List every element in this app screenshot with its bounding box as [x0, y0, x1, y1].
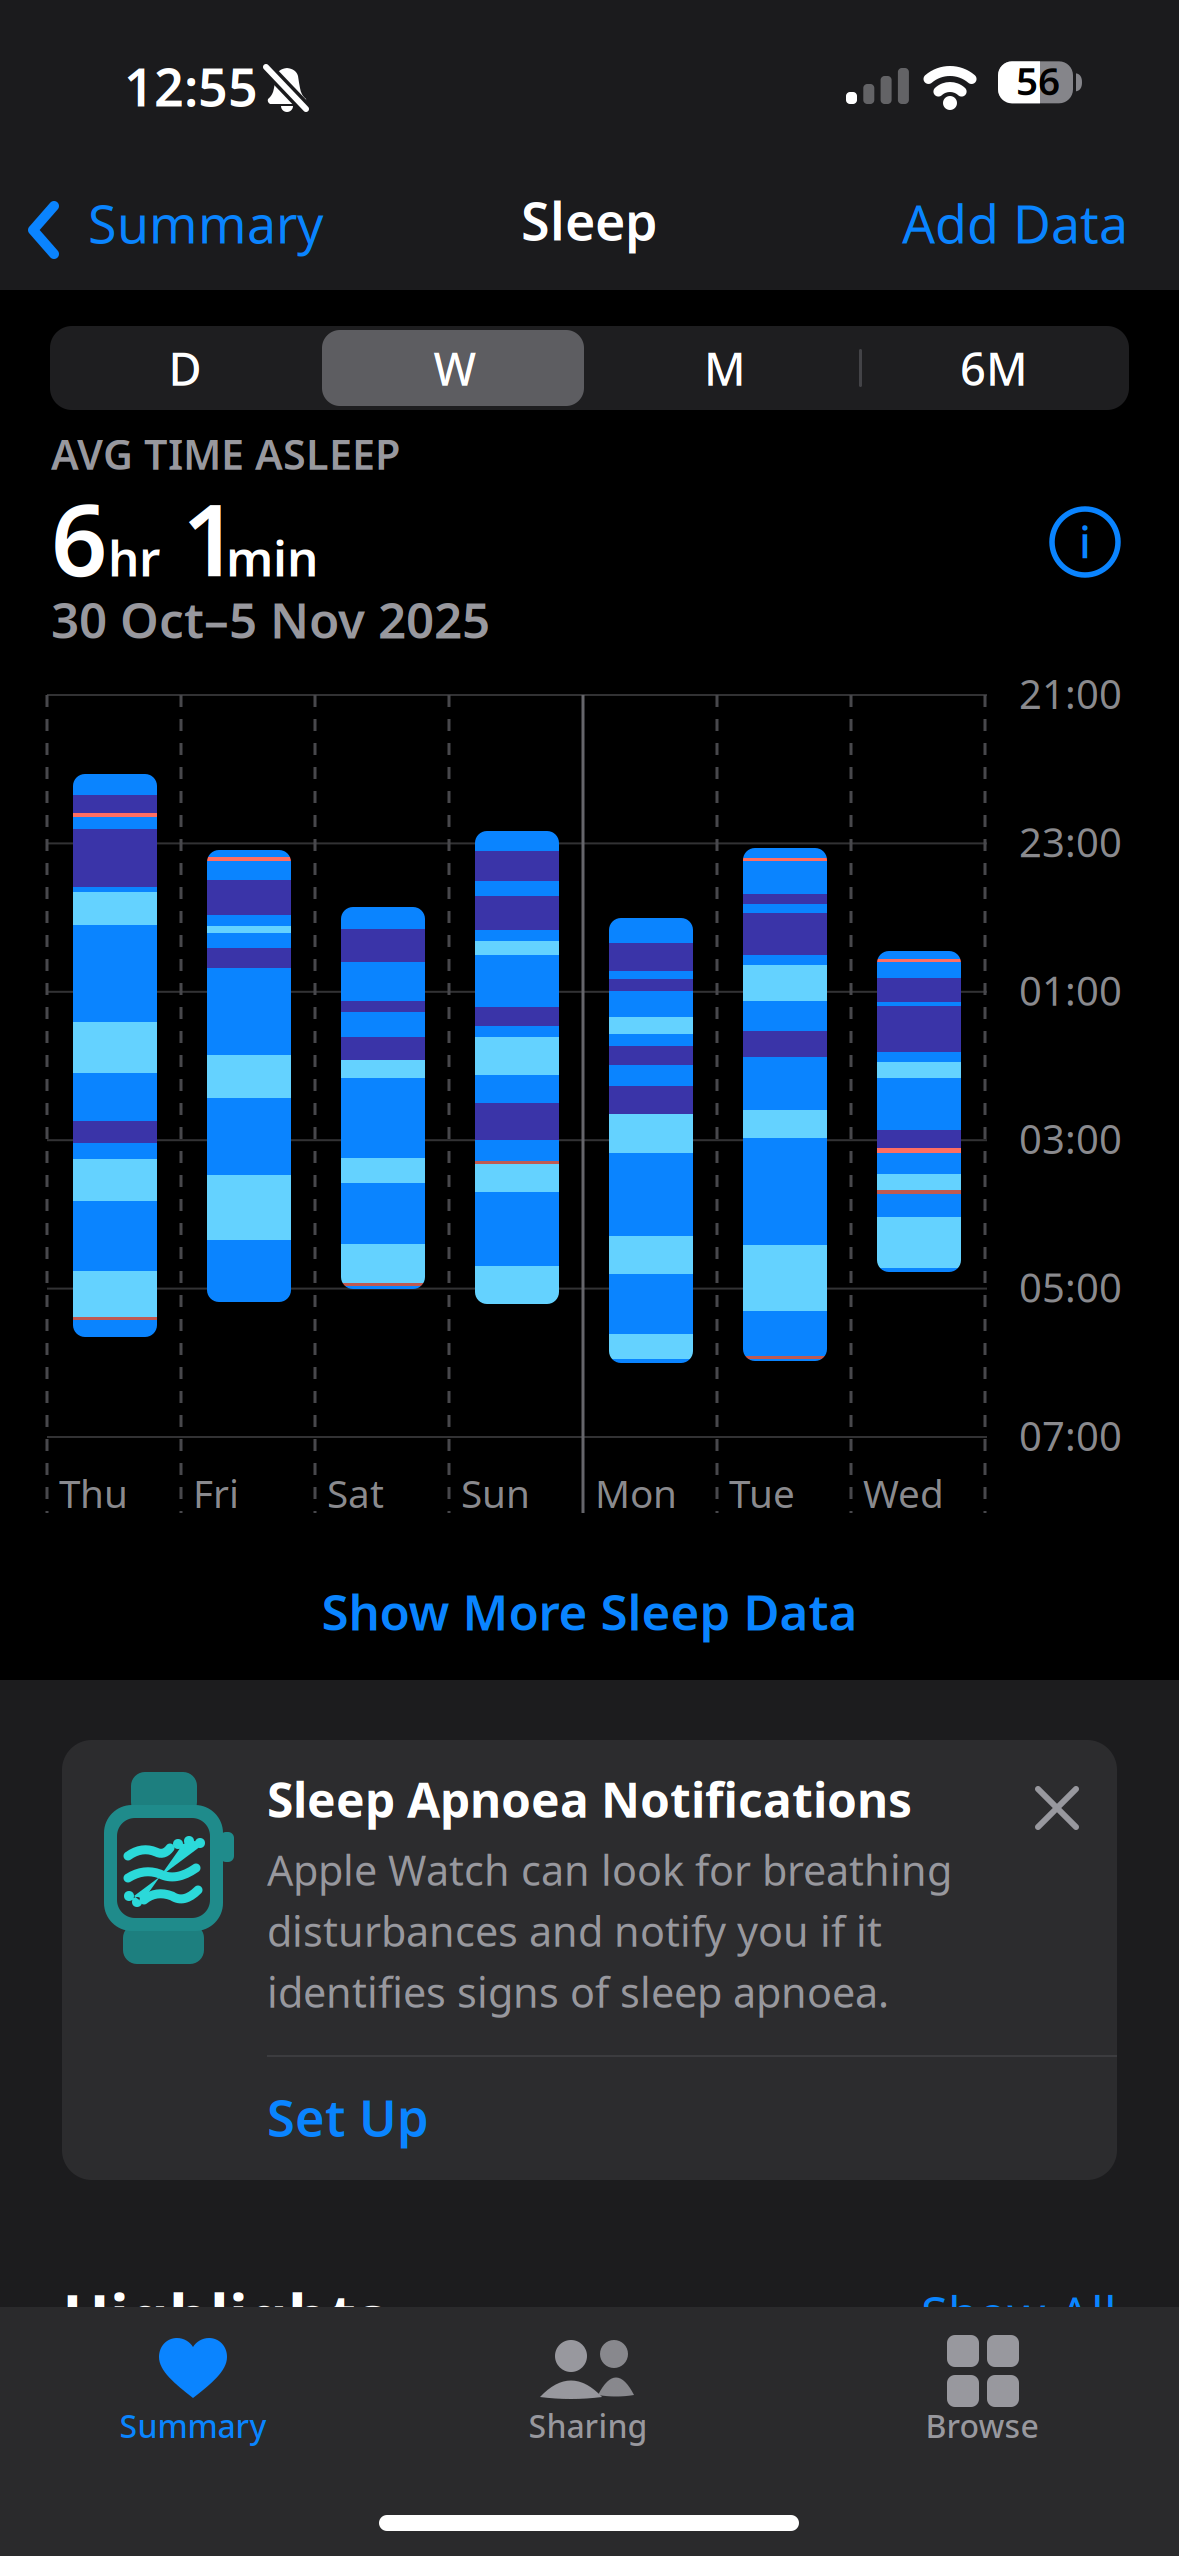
staticText: 23:00 [1019, 815, 1122, 868]
button[interactable]: About Sleep [1048, 505, 1122, 579]
staticText: Add Data [902, 189, 1128, 258]
staticText: Mon [595, 1467, 677, 1518]
staticText: identifies signs of sleep apnoea. [267, 1964, 889, 2019]
staticText: Apple Watch can look for breathing [267, 1842, 952, 1897]
button[interactable]: Sharing [393, 2307, 783, 2467]
staticText: Highlights [62, 2274, 387, 2357]
staticText: D [168, 338, 201, 398]
button[interactable]: Show All [0, 2281, 1117, 2346]
staticText: Thu [59, 1467, 128, 1518]
staticText: AVG TIME ASLEEP [51, 426, 400, 481]
staticText: min [226, 525, 318, 590]
staticText: Browse [925, 2404, 1038, 2447]
staticText: Summary [119, 2404, 266, 2447]
staticText: hr [108, 525, 160, 590]
staticText: Summary [88, 189, 324, 258]
button[interactable]: 6M [859, 338, 1129, 398]
staticText: M [704, 338, 746, 398]
button[interactable]: W [320, 338, 590, 398]
staticText: 30 Oct–5 Nov 2025 [51, 587, 490, 652]
staticText: Show All [921, 2281, 1117, 2346]
staticText: Wed [863, 1467, 944, 1518]
staticText: Sat [327, 1467, 384, 1518]
staticText: 07:00 [1019, 1409, 1122, 1462]
staticText: Sleep [521, 186, 658, 255]
staticText: Sleep Apnoea Notifications [267, 1767, 912, 1831]
button[interactable]: Show More Sleep Data [0, 1579, 1179, 1644]
staticText: Sharing [528, 2404, 647, 2447]
staticText: 21:00 [1019, 667, 1122, 720]
staticText: 6 [51, 472, 107, 603]
staticText: 03:00 [1019, 1112, 1122, 1165]
staticText: i [1079, 512, 1091, 570]
staticText: 6M [960, 338, 1028, 398]
button[interactable]: D [50, 338, 320, 398]
button[interactable]: Dismiss [1038, 1789, 1076, 1827]
button[interactable]: Add Data [0, 189, 1128, 258]
button[interactable]: M [590, 338, 860, 398]
staticText: 01:00 [1019, 964, 1122, 1017]
staticText: Set Up [267, 2083, 429, 2151]
staticText: 56 [1016, 55, 1060, 106]
staticText: 1 [182, 472, 238, 603]
staticText: 12:55 [124, 52, 258, 121]
staticText: disturbances and notify you if it [267, 1903, 882, 1958]
staticText: Sun [461, 1467, 530, 1518]
staticText: Tue [729, 1467, 795, 1518]
staticText: Fri [193, 1467, 239, 1518]
staticText: Show More Sleep Data [321, 1579, 857, 1644]
staticText: 05:00 [1019, 1260, 1122, 1313]
button[interactable]: Set Up [62, 1740, 224, 1807]
button[interactable]: Summary [0, 2307, 386, 2467]
button[interactable]: Summary [0, 0, 236, 69]
button[interactable]: Browse [787, 2307, 1177, 2467]
staticText: W [433, 338, 476, 398]
